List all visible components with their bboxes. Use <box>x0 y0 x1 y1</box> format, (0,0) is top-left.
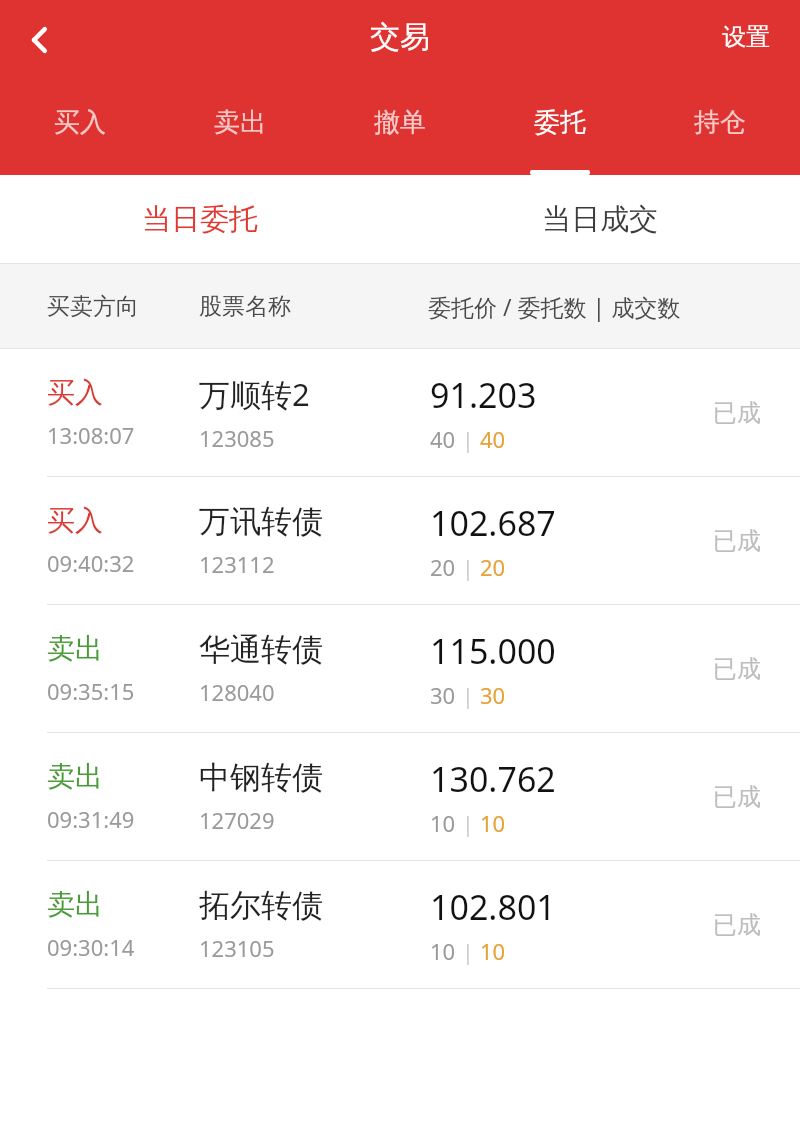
staticText: 买入 <box>47 503 103 538</box>
button[interactable]: 卖出 <box>160 85 320 175</box>
staticText: 卖出 <box>47 631 103 666</box>
staticText: 20 <box>480 552 506 582</box>
button[interactable]: 卖出 <box>0 605 800 732</box>
staticText: 123105 <box>199 933 275 963</box>
staticText: 卖出 <box>47 887 103 922</box>
staticText: 128040 <box>199 677 275 707</box>
staticText: | <box>456 936 480 966</box>
staticText: 102.687 <box>430 500 556 546</box>
staticText: 委托 <box>534 106 586 139</box>
staticText: 当日成交 <box>542 201 658 238</box>
staticText: 10 <box>430 808 456 838</box>
staticText: | <box>456 424 480 454</box>
staticText: 当日委托 <box>142 201 258 238</box>
staticText: 已成 <box>713 654 761 684</box>
staticText: 10 <box>430 936 456 966</box>
staticText: 撤单 <box>374 106 426 139</box>
staticText: 40 <box>480 424 506 454</box>
staticText: 130.762 <box>430 756 556 802</box>
staticText: 已成 <box>713 782 761 812</box>
staticText: 买入 <box>54 106 106 139</box>
staticText: 115.000 <box>430 628 556 674</box>
staticText: 中钢转债 <box>199 758 323 797</box>
staticText: 委托价 / 委托数 | 成交数 <box>428 291 681 322</box>
button[interactable]: 当日成交 <box>400 175 800 263</box>
staticText: 09:35:15 <box>47 676 135 706</box>
staticText: | <box>456 680 480 710</box>
staticText: 已成 <box>713 398 761 428</box>
button[interactable]: 当日委托 <box>0 175 400 263</box>
staticText: 卖出 <box>47 759 103 794</box>
staticText: 123112 <box>199 549 275 579</box>
button[interactable]: 撤单 <box>320 85 480 175</box>
staticText: 万顺转2 <box>199 373 310 415</box>
staticText: 40 <box>430 424 456 454</box>
button[interactable]: 买入 <box>0 349 800 476</box>
staticText: 09:40:32 <box>47 548 135 578</box>
button[interactable]: Back <box>8 8 72 72</box>
staticText: 10 <box>480 808 506 838</box>
staticText: 交易 <box>370 18 430 56</box>
staticText: 万讯转债 <box>199 502 323 541</box>
staticText: 华通转债 <box>199 630 323 669</box>
staticText: 买卖方向 <box>47 292 139 321</box>
staticText: 91.203 <box>430 372 537 418</box>
button[interactable]: 持仓 <box>640 85 800 175</box>
staticText: | <box>456 552 480 582</box>
staticText: 持仓 <box>694 106 746 139</box>
staticText: 09:31:49 <box>47 804 135 834</box>
staticText: | <box>456 808 480 838</box>
button[interactable]: 买入 <box>0 85 160 175</box>
staticText: 股票名称 <box>199 292 291 321</box>
staticText: 已成 <box>713 526 761 556</box>
button[interactable]: 卖出 <box>0 861 800 988</box>
staticText: 127029 <box>199 805 275 835</box>
staticText: 102.801 <box>430 884 556 930</box>
button[interactable]: 委托 <box>480 85 640 175</box>
staticText: 20 <box>430 552 456 582</box>
button[interactable]: 卖出 <box>0 733 800 860</box>
staticText: 10 <box>480 936 506 966</box>
staticText: 设置 <box>722 22 770 52</box>
button[interactable]: 设置 <box>708 10 784 64</box>
button[interactable]: 买入 <box>0 477 800 604</box>
staticText: 123085 <box>199 423 275 453</box>
staticText: 买入 <box>47 375 103 410</box>
staticText: 09:30:14 <box>47 932 135 962</box>
staticText: 拓尔转债 <box>199 886 323 925</box>
staticText: 已成 <box>713 910 761 940</box>
staticText: 30 <box>480 680 506 710</box>
staticText: 30 <box>430 680 456 710</box>
staticText: 13:08:07 <box>47 420 135 450</box>
staticText: 卖出 <box>214 106 266 139</box>
